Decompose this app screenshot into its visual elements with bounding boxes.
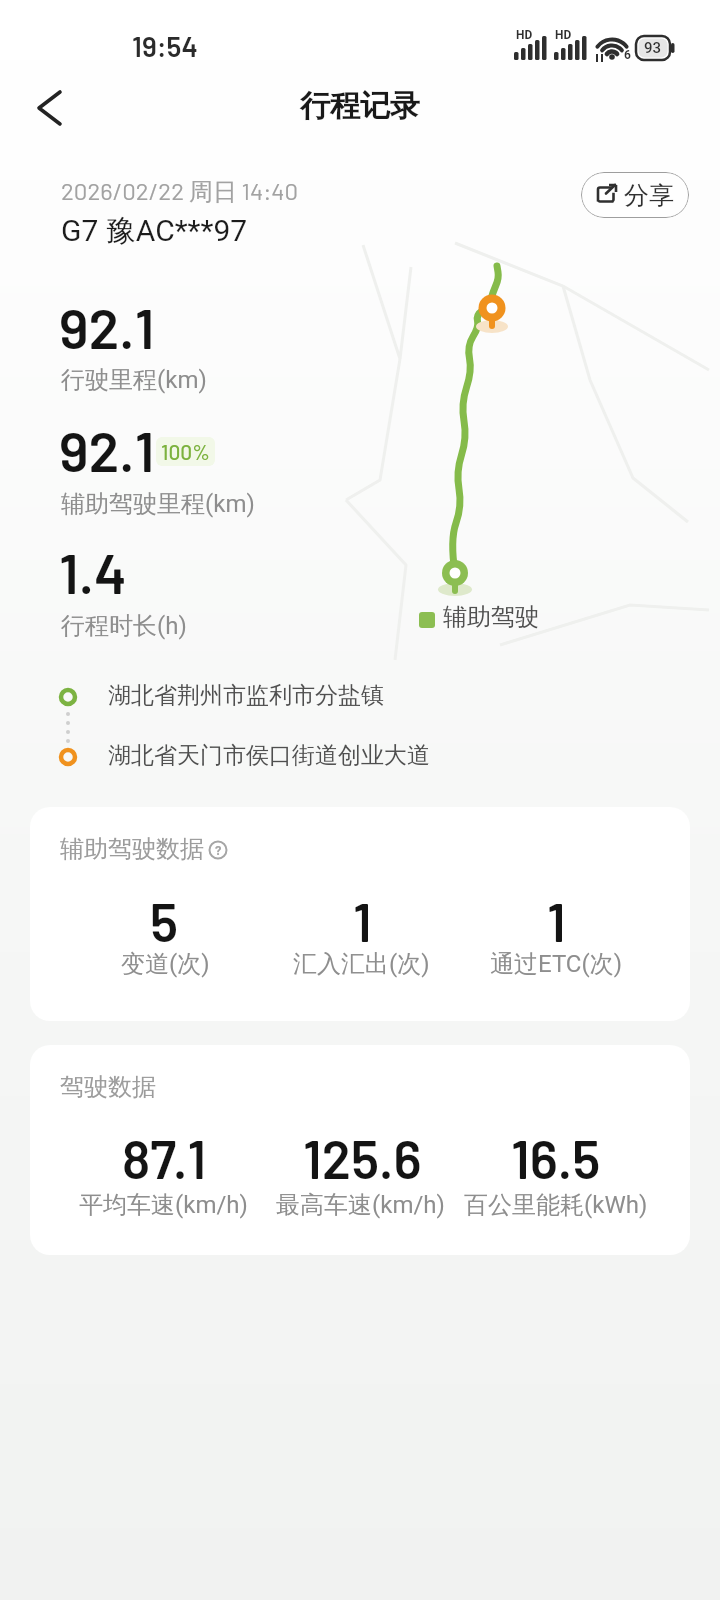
staticText: 93	[644, 39, 662, 57]
staticText: HD	[516, 28, 533, 42]
staticText: 行程时长(h)	[61, 611, 187, 641]
staticText: 湖北省天门市侯口街道创业大道	[108, 741, 430, 770]
staticText: 通过ETC(次)	[490, 949, 623, 979]
staticText: 行驶里程(km)	[61, 365, 207, 395]
staticText: 变道(次)	[121, 949, 210, 979]
staticText: 92.1	[59, 416, 155, 483]
staticText: 百公里能耗(kWh)	[464, 1190, 648, 1220]
staticText: G7 豫AC***97	[61, 212, 248, 250]
staticText: 辅助驾驶数据	[60, 834, 204, 864]
staticText: 19:54	[132, 29, 198, 63]
button[interactable]: 分享	[581, 172, 689, 218]
staticText: 辅助驾驶里程(km)	[61, 489, 255, 519]
staticText: 1	[547, 889, 566, 953]
staticText: 1.4	[59, 538, 127, 605]
staticText: 87.1	[122, 1126, 207, 1190]
staticText: 6	[624, 48, 631, 62]
staticText: 驾驶数据	[60, 1072, 156, 1102]
staticText: 16.5	[511, 1126, 601, 1190]
staticText: 平均车速(km/h)	[79, 1190, 248, 1220]
staticText: 湖北省荆州市监利市分盐镇	[108, 681, 384, 710]
staticText: 汇入汇出(次)	[293, 949, 430, 979]
staticText: 最高车速(km/h)	[276, 1190, 445, 1220]
staticText: 100%	[161, 439, 210, 464]
staticText: ?	[215, 843, 222, 858]
staticText: 92.1	[59, 293, 155, 360]
button[interactable]	[26, 84, 74, 132]
button[interactable]: ?	[208, 840, 228, 860]
staticText: 5	[150, 889, 179, 953]
staticText: 辅助驾驶	[443, 602, 539, 632]
staticText: 1	[353, 889, 372, 953]
staticText: HD	[555, 28, 572, 42]
staticText: 行程记录	[300, 87, 420, 125]
staticText: 分享	[624, 180, 674, 211]
staticText: 125.6	[303, 1126, 422, 1190]
staticText: 2026/02/22 周日 14:40	[61, 176, 299, 207]
